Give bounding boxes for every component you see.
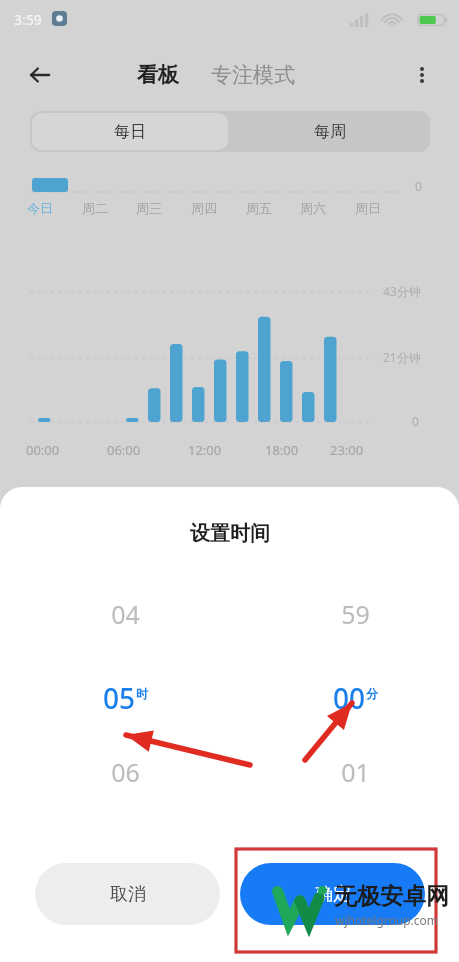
staticText: 周五 <box>246 200 272 216</box>
button[interactable]: 周四 <box>188 198 220 218</box>
button[interactable]: 每周 <box>232 113 428 150</box>
staticText: 分 <box>366 686 378 701</box>
button[interactable]: Hour picker <box>60 583 190 803</box>
staticText: 01 <box>341 755 370 789</box>
staticText: 每日 <box>114 122 146 142</box>
button[interactable]: 看板 <box>131 58 185 92</box>
staticText: 59 <box>341 597 370 631</box>
button[interactable]: 周三 <box>133 198 165 218</box>
button[interactable]: 周日 <box>352 198 384 218</box>
button[interactable]: 周六 <box>297 198 329 218</box>
button[interactable]: 取消 <box>35 863 220 925</box>
staticText: wjhotelgroup.com <box>335 912 439 928</box>
button[interactable]: 周二 <box>79 198 111 218</box>
staticText: 专注模式 <box>211 62 295 88</box>
staticText: 3:59 <box>14 10 42 29</box>
button[interactable]: Back <box>18 53 62 97</box>
staticText: 无极安卓网 <box>334 882 449 911</box>
staticText: 每周 <box>314 122 346 142</box>
staticText: 周二 <box>82 200 108 216</box>
staticText: 周四 <box>191 200 217 216</box>
staticText: 04 <box>111 597 140 631</box>
staticText: 05 <box>103 679 136 717</box>
button[interactable]: 确定 <box>240 863 425 925</box>
staticText: 21分钟 <box>383 349 421 365</box>
staticText: 06 <box>111 755 140 789</box>
staticText: 取消 <box>110 883 146 906</box>
button[interactable]: 专注模式 <box>205 58 301 92</box>
button[interactable]: Minute picker <box>290 583 420 803</box>
button[interactable]: More options <box>401 54 443 96</box>
staticText: 23:00 <box>330 441 364 459</box>
staticText: 周六 <box>300 200 326 216</box>
staticText: 设置时间 <box>190 521 270 546</box>
staticText: 00 <box>333 679 366 717</box>
staticText: 43分钟 <box>383 283 421 299</box>
staticText: 00:00 <box>26 441 60 459</box>
staticText: 06:00 <box>107 441 141 459</box>
staticText: 看板 <box>137 62 179 88</box>
staticText: 0 <box>412 413 419 429</box>
staticText: 时 <box>136 686 148 701</box>
staticText: 周三 <box>136 200 162 216</box>
button[interactable]: 今日 <box>24 198 56 218</box>
staticText: 今日 <box>27 200 53 216</box>
button[interactable]: 周五 <box>243 198 275 218</box>
staticText: 18:00 <box>265 441 299 459</box>
staticText: 周日 <box>355 200 381 216</box>
staticText: 确定 <box>315 883 351 906</box>
staticText: 0 <box>415 178 422 194</box>
staticText: 12:00 <box>188 441 222 459</box>
button[interactable]: 每日 <box>32 113 228 150</box>
